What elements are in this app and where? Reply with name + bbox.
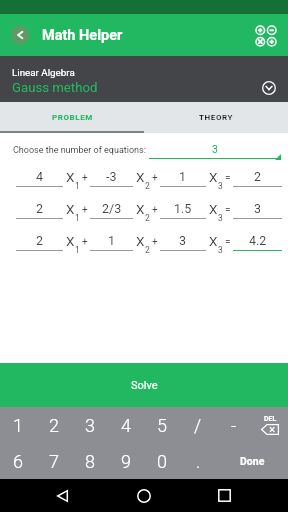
staticText: 1.5 <box>174 201 192 216</box>
staticText: + <box>82 204 88 216</box>
staticText: 8 <box>85 451 95 472</box>
button[interactable]: 4 <box>108 407 144 443</box>
button[interactable]: 1 <box>0 407 36 443</box>
staticText: 1 <box>179 169 187 184</box>
staticText: 2 <box>254 169 262 184</box>
staticText: X <box>136 201 145 217</box>
staticText: 2 <box>145 245 150 255</box>
button[interactable]: Expand <box>252 62 286 96</box>
button[interactable]: Back <box>45 479 79 512</box>
staticText: 1 <box>75 245 80 255</box>
staticText: Gauss method <box>12 80 98 95</box>
button[interactable]: Linear Algebra <box>0 56 288 102</box>
staticText: 2 <box>49 415 59 436</box>
button[interactable]: Solve <box>0 363 288 407</box>
staticText: + <box>82 236 88 248</box>
staticText: 3 <box>149 143 281 155</box>
button[interactable]: 9 <box>108 443 144 479</box>
staticText: 3 <box>254 201 262 216</box>
staticText: 2 <box>145 213 150 223</box>
button[interactable]: . <box>180 443 216 479</box>
staticText: + <box>152 172 158 184</box>
staticText: 1 <box>75 181 80 191</box>
staticText: Done <box>240 455 265 467</box>
staticText: 2/3 <box>102 201 122 216</box>
button[interactable]: Delete <box>252 407 288 443</box>
staticText: X <box>209 169 218 185</box>
button[interactable]: - <box>216 407 252 443</box>
staticText: 3 <box>218 245 223 255</box>
staticText: X <box>209 233 218 249</box>
button[interactable]: 3 <box>72 407 108 443</box>
staticText: X <box>136 169 145 185</box>
staticText: . <box>196 451 201 472</box>
button[interactable]: 2 <box>16 201 63 219</box>
staticText: 3 <box>218 213 223 223</box>
button[interactable]: 3 <box>149 142 281 159</box>
button[interactable]: / <box>180 407 216 443</box>
button[interactable]: 2 <box>36 407 72 443</box>
button[interactable]: -3 <box>90 169 133 187</box>
staticText: 7 <box>49 451 59 472</box>
button[interactable]: 4.2 <box>233 233 282 251</box>
staticText: + <box>152 204 158 216</box>
button[interactable]: THEORY <box>144 102 288 133</box>
staticText: 6 <box>13 451 23 472</box>
button[interactable]: 8 <box>72 443 108 479</box>
button[interactable]: 3 <box>233 201 282 219</box>
staticText: = <box>225 236 231 248</box>
button[interactable]: Home <box>127 479 161 512</box>
button[interactable]: 0 <box>144 443 180 479</box>
staticText: PROBLEM <box>52 113 93 122</box>
staticText: 3 <box>85 415 95 436</box>
button[interactable]: Done <box>216 443 288 479</box>
button[interactable]: 4 <box>16 169 63 187</box>
staticText: Choose the number of equations: <box>13 145 146 156</box>
staticText: 9 <box>121 451 131 472</box>
staticText: DEL <box>264 415 277 423</box>
staticText: + <box>82 172 88 184</box>
staticText: Linear Algebra <box>12 67 75 78</box>
staticText: = <box>225 172 231 184</box>
staticText: - <box>231 415 237 436</box>
staticText: X <box>66 169 75 185</box>
button[interactable]: 2/3 <box>90 201 133 219</box>
button[interactable]: 6 <box>0 443 36 479</box>
button[interactable]: 2 <box>16 233 63 251</box>
staticText: 2 <box>36 201 44 216</box>
button[interactable]: 1 <box>160 169 206 187</box>
button[interactable]: 7 <box>36 443 72 479</box>
button[interactable]: 3 <box>160 233 206 251</box>
staticText: 4 <box>121 415 131 436</box>
staticText: 1 <box>75 213 80 223</box>
staticText: 2 <box>145 181 150 191</box>
button[interactable]: 2 <box>233 169 282 187</box>
staticText: 3 <box>218 181 223 191</box>
button[interactable]: Back <box>6 21 34 49</box>
staticText: Math Helper <box>42 27 123 44</box>
staticText: THEORY <box>199 113 234 122</box>
staticText: X <box>209 201 218 217</box>
staticText: 2 <box>36 233 44 248</box>
staticText: 3 <box>179 233 187 248</box>
staticText: + <box>152 236 158 248</box>
staticText: 5 <box>157 415 167 436</box>
staticText: X <box>66 201 75 217</box>
staticText: 4 <box>36 169 44 184</box>
button[interactable]: 1.5 <box>160 201 206 219</box>
staticText: = <box>225 204 231 216</box>
staticText: / <box>194 415 202 436</box>
staticText: 1 <box>13 415 23 436</box>
button[interactable]: Calculator <box>249 17 285 53</box>
button[interactable]: PROBLEM <box>0 102 144 133</box>
button[interactable]: 1 <box>90 233 133 251</box>
staticText: X <box>136 233 145 249</box>
staticText: Solve <box>131 379 158 392</box>
button[interactable]: 5 <box>144 407 180 443</box>
staticText: -3 <box>106 169 117 184</box>
staticText: X <box>66 233 75 249</box>
staticText: 0 <box>157 451 167 472</box>
staticText: 4.2 <box>249 233 267 248</box>
staticText: 1 <box>108 233 116 248</box>
button[interactable]: Recents <box>207 479 241 512</box>
